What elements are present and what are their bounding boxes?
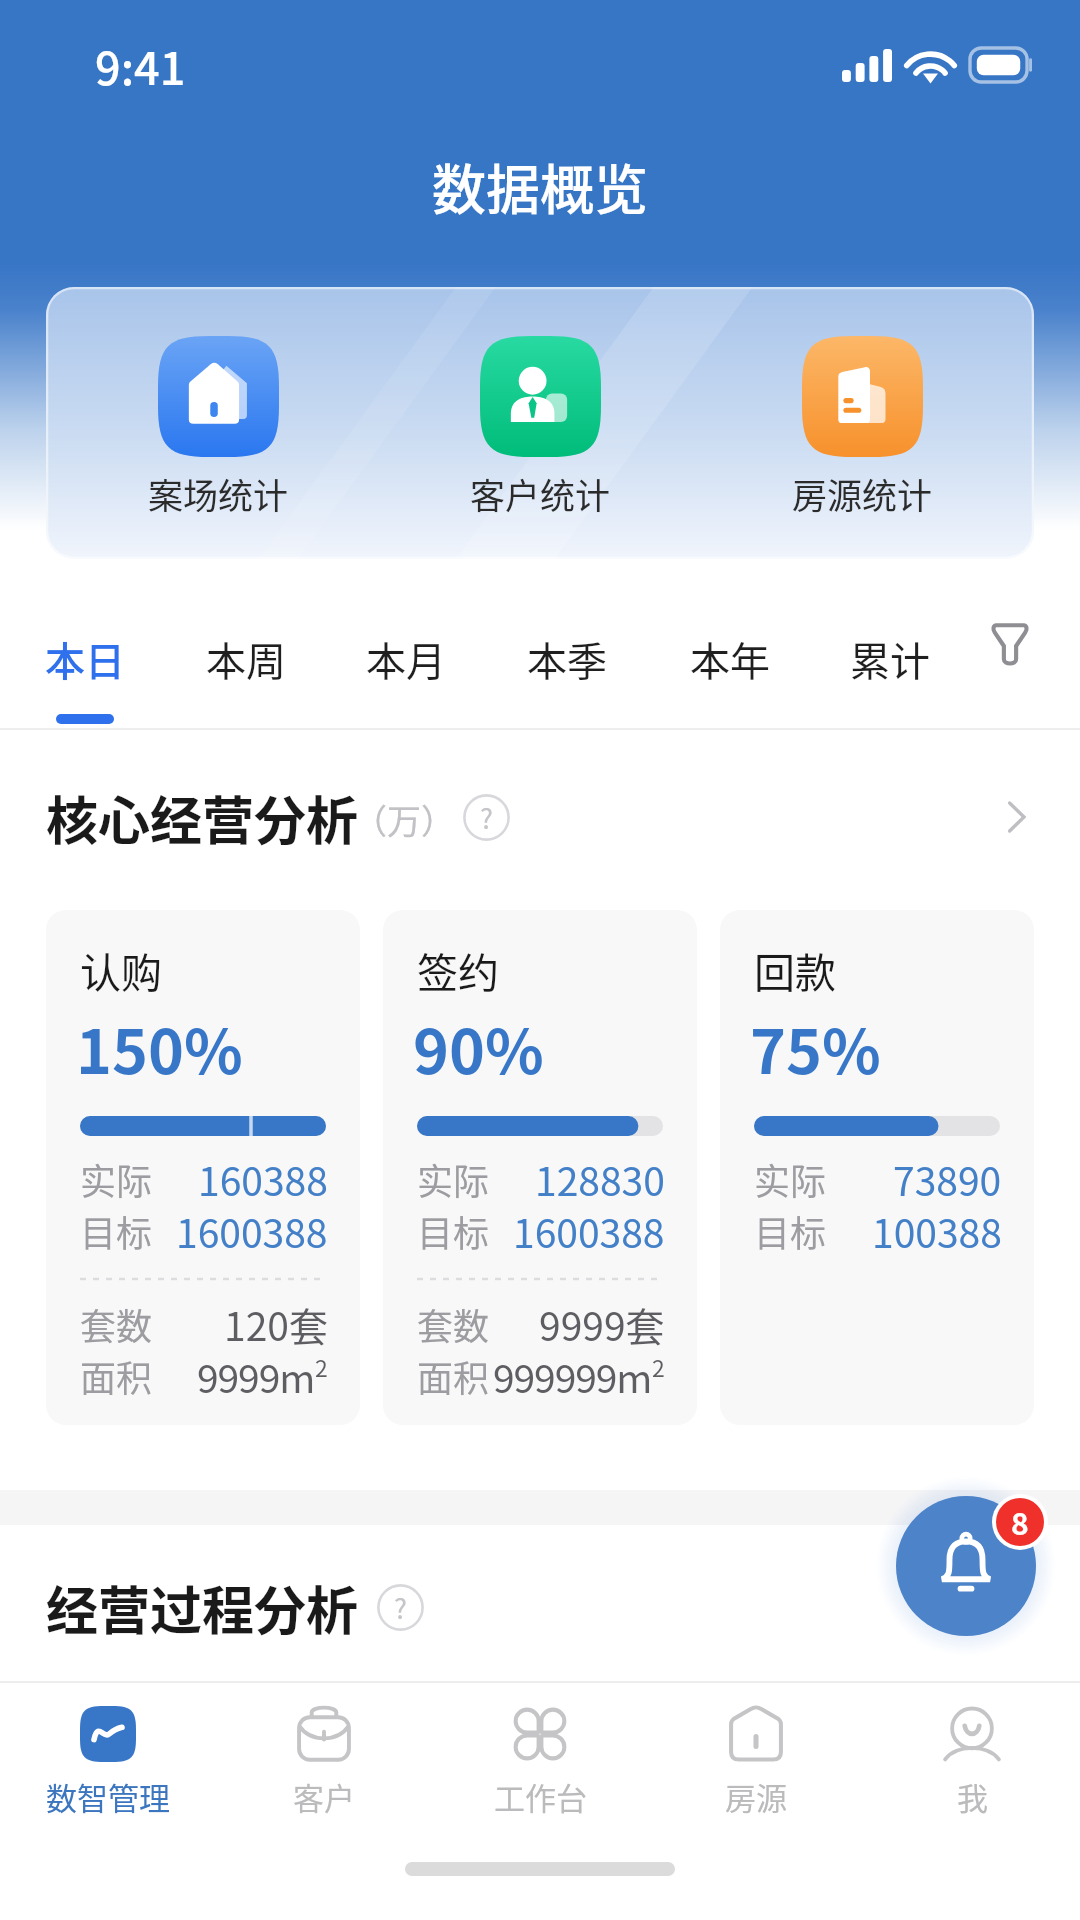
staticText: 8 bbox=[1011, 1500, 1029, 1543]
staticText: 数智管理 bbox=[46, 1774, 170, 1819]
staticText: 150% bbox=[76, 1003, 243, 1091]
staticText: 累计 bbox=[850, 630, 930, 688]
button[interactable]: 通知 bbox=[896, 1496, 1036, 1636]
staticText: 签约 bbox=[417, 940, 499, 999]
staticText: 房源统计 bbox=[792, 468, 933, 519]
staticText: 999999m bbox=[493, 1348, 652, 1400]
button[interactable]: 房源 bbox=[648, 1683, 864, 1842]
button[interactable]: 客户统计 bbox=[379, 287, 701, 559]
staticText: 73890 bbox=[893, 1151, 1002, 1203]
staticText: 9:41 bbox=[95, 33, 186, 98]
button[interactable]: 工作台 bbox=[432, 1683, 648, 1842]
staticText: 面积 bbox=[417, 1350, 490, 1402]
staticText: 目标 bbox=[417, 1205, 490, 1257]
button[interactable]: 本周 bbox=[168, 600, 324, 730]
staticText: ? bbox=[394, 1587, 407, 1626]
staticText: 1600388 bbox=[176, 1203, 328, 1255]
staticText: 案场统计 bbox=[148, 468, 289, 519]
staticText: 100388 bbox=[872, 1203, 1002, 1255]
button[interactable]: 本月 bbox=[328, 600, 484, 730]
staticText: 1600388 bbox=[513, 1203, 665, 1255]
staticText: 9999m bbox=[197, 1348, 315, 1400]
button[interactable]: 累计 bbox=[812, 600, 968, 730]
staticText: 90% bbox=[413, 1003, 544, 1091]
staticText: 数据概览 bbox=[0, 147, 1080, 225]
staticText: 面积 bbox=[80, 1350, 153, 1402]
staticText: 套数 bbox=[80, 1298, 153, 1350]
button[interactable]: 本季 bbox=[489, 600, 645, 730]
button[interactable]: 经营过程分析 bbox=[0, 1557, 1080, 1657]
button[interactable]: 本日 bbox=[7, 600, 163, 730]
button[interactable]: 本年 bbox=[652, 600, 808, 730]
staticText: 我 bbox=[957, 1774, 988, 1819]
staticText: 本月 bbox=[366, 630, 446, 688]
button[interactable]: 筛选 bbox=[974, 600, 1046, 730]
button[interactable]: 回款 bbox=[720, 910, 1034, 1425]
staticText: 核心经营分析 bbox=[46, 780, 359, 855]
staticText: 目标 bbox=[754, 1205, 827, 1257]
staticText: 本周 bbox=[206, 630, 286, 688]
staticText: 客户 bbox=[293, 1774, 355, 1819]
staticText: 房源 bbox=[725, 1774, 787, 1819]
button[interactable]: 签约 bbox=[383, 910, 697, 1425]
staticText: 套数 bbox=[417, 1298, 490, 1350]
button[interactable]: 案场统计 bbox=[57, 287, 379, 559]
staticText: 本年 bbox=[690, 630, 770, 688]
staticText: 160388 bbox=[198, 1151, 328, 1203]
staticText: 回款 bbox=[754, 940, 836, 999]
staticText: 128830 bbox=[535, 1151, 665, 1203]
staticText: 2 bbox=[315, 1350, 328, 1383]
staticText: 75% bbox=[750, 1003, 881, 1091]
button[interactable]: 数智管理 bbox=[0, 1683, 216, 1842]
staticText: 9999套 bbox=[539, 1296, 665, 1348]
button[interactable]: 客户 bbox=[216, 1683, 432, 1842]
staticText: 实际 bbox=[417, 1153, 490, 1205]
staticText: 120套 bbox=[224, 1296, 328, 1348]
staticText: 目标 bbox=[80, 1205, 153, 1257]
staticText: 经营过程分析 bbox=[46, 1570, 359, 1645]
staticText: 认购 bbox=[80, 940, 162, 999]
staticText: （万） bbox=[353, 795, 455, 844]
staticText: 实际 bbox=[80, 1153, 153, 1205]
staticText: 工作台 bbox=[494, 1774, 587, 1819]
staticText: 2 bbox=[652, 1350, 665, 1383]
button[interactable]: 我 bbox=[864, 1683, 1080, 1842]
staticText: ? bbox=[480, 797, 493, 836]
staticText: 实际 bbox=[754, 1153, 827, 1205]
button[interactable]: 认购 bbox=[46, 910, 360, 1425]
button[interactable]: 房源统计 bbox=[701, 287, 1023, 559]
staticText: 本日 bbox=[45, 630, 125, 688]
staticText: 本季 bbox=[527, 630, 607, 688]
button[interactable]: 核心经营分析 bbox=[0, 763, 1080, 871]
staticText: 客户统计 bbox=[470, 468, 611, 519]
